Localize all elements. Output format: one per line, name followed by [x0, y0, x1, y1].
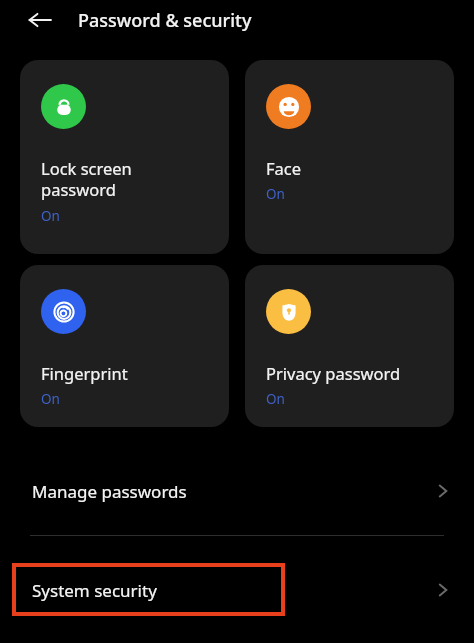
button[interactable]: Manage passwords — [0, 465, 474, 517]
staticText: On — [41, 390, 60, 408]
staticText: Fingerprint — [41, 362, 128, 384]
staticText: Face — [266, 157, 302, 179]
staticText: On — [41, 207, 60, 225]
staticText: Privacy password — [266, 362, 401, 384]
staticText: Manage passwords — [32, 480, 187, 503]
staticText: Password & security — [78, 8, 252, 33]
button[interactable]: Face — [245, 60, 454, 254]
staticText: On — [266, 390, 285, 408]
button[interactable]: Lock screen password — [20, 60, 229, 254]
button[interactable]: Privacy password — [245, 265, 454, 427]
staticText: Lock screen password — [41, 157, 132, 201]
staticText: On — [266, 185, 285, 203]
staticText: System security — [32, 579, 157, 602]
button[interactable]: Fingerprint — [20, 265, 229, 427]
button[interactable]: System security — [0, 564, 474, 616]
button[interactable]: Back — [22, 2, 58, 38]
